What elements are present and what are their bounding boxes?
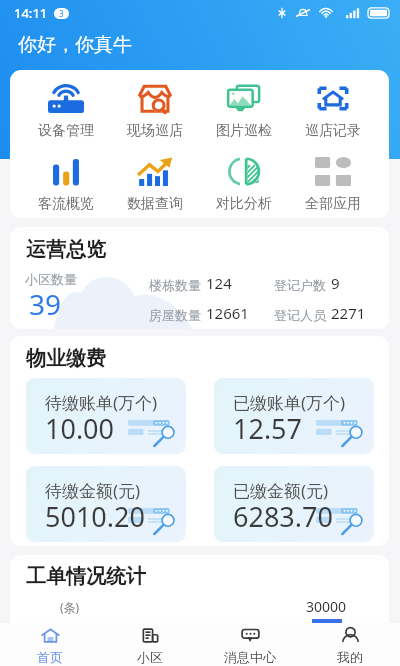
staticText: 物业缴费 [26, 346, 106, 371]
button[interactable]: 设备管理 [22, 84, 110, 140]
button[interactable]: 小区 [100, 625, 200, 665]
button[interactable]: 图片巡检 [199, 84, 288, 140]
staticText: 30000 [306, 597, 347, 616]
staticText: 我的 [337, 649, 363, 665]
button[interactable]: 客流概览 [22, 157, 110, 213]
staticText: 10.00 [45, 410, 115, 447]
button[interactable]: 消息中心 [200, 625, 300, 665]
button[interactable]: 已缴账单(万个) [214, 378, 374, 454]
staticText: 124 [206, 273, 232, 293]
staticText: 消息中心 [224, 649, 276, 665]
button[interactable]: 已缴金额(元) [214, 466, 374, 542]
staticText: 5010.20 [45, 498, 145, 535]
staticText: 6283.70 [233, 498, 333, 535]
staticText: 登记户数 [274, 277, 326, 293]
staticText: 数据查询 [127, 195, 183, 213]
staticText: 巡店记录 [305, 122, 361, 140]
staticText: 9 [331, 273, 340, 293]
button[interactable]: 全部应用 [288, 157, 377, 213]
staticText: 楼栋数量 [149, 277, 201, 293]
staticText: 登记人员 [274, 307, 326, 323]
button[interactable]: 首页 [0, 625, 100, 665]
staticText: 你好，你真牛 [18, 33, 132, 57]
staticText: (条) [60, 599, 80, 615]
staticText: 对比分析 [216, 195, 272, 213]
staticText: 已缴金额(元) [233, 479, 329, 502]
staticText: 房屋数量 [149, 307, 201, 323]
staticText: 待缴金额(元) [45, 479, 141, 502]
staticText: 已缴账单(万个) [233, 391, 346, 414]
staticText: 3 [59, 8, 64, 19]
button[interactable]: 待缴金额(元) [26, 466, 186, 542]
staticText: 12.57 [233, 410, 303, 447]
staticText: 小区 [137, 649, 163, 665]
button[interactable]: 巡店记录 [288, 84, 377, 140]
staticText: 全部应用 [305, 195, 361, 213]
staticText: 小区数量 [25, 271, 77, 287]
staticText: 2271 [331, 303, 366, 323]
staticText: 运营总览 [26, 237, 106, 262]
button[interactable]: 对比分析 [199, 157, 288, 213]
staticText: 现场巡店 [127, 122, 183, 140]
staticText: 工单情况统计 [26, 564, 146, 589]
staticText: 39 [29, 285, 62, 323]
staticText: 14:11 [14, 4, 48, 22]
staticText: 12661 [206, 303, 249, 323]
button[interactable]: 待缴账单(万个) [26, 378, 186, 454]
button[interactable]: 我的 [300, 625, 400, 665]
button[interactable]: 数据查询 [110, 157, 199, 213]
button[interactable]: 现场巡店 [110, 84, 199, 140]
staticText: 客流概览 [38, 195, 94, 213]
staticText: 30,000 – [26, 618, 77, 636]
staticText: 首页 [37, 649, 63, 665]
staticText: 设备管理 [38, 122, 94, 140]
staticText: 图片巡检 [216, 122, 272, 140]
staticText: 待缴账单(万个) [45, 391, 158, 414]
